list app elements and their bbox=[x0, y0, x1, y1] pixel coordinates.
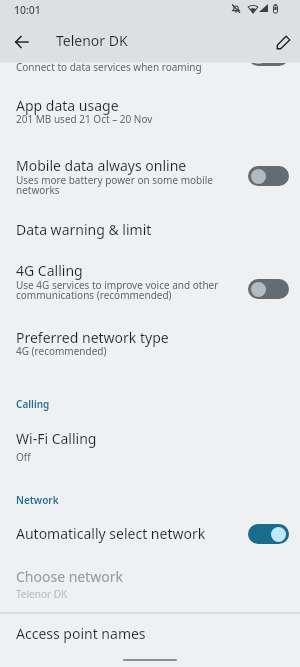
staticText: networks bbox=[16, 183, 60, 197]
staticText: Telenor DK bbox=[56, 31, 128, 50]
staticText: 4G Calling bbox=[16, 261, 83, 280]
staticText: Use 4G services to improve voice and oth… bbox=[16, 278, 219, 292]
staticText: 201 MB used 21 Oct – 20 Nov bbox=[16, 112, 153, 126]
staticText: Mobile data always online bbox=[16, 156, 187, 175]
button[interactable]: Switch off bbox=[248, 166, 289, 186]
staticText: Choose network bbox=[16, 567, 124, 586]
staticText: Automatically select network bbox=[16, 524, 206, 543]
staticText: Preferred network type bbox=[16, 328, 169, 347]
button[interactable]: Switch on bbox=[248, 524, 289, 544]
staticText: 10:01 bbox=[14, 3, 41, 17]
staticText: Connect to data services when roaming bbox=[16, 60, 202, 74]
staticText: Calling bbox=[16, 397, 50, 411]
staticText: Data warning & limit bbox=[16, 220, 152, 239]
staticText: Uses more battery power on some mobile bbox=[16, 173, 213, 187]
staticText: 4G (recommended) bbox=[16, 344, 107, 358]
staticText: Off bbox=[16, 450, 31, 464]
staticText: App data usage bbox=[16, 96, 119, 115]
button[interactable]: Edit bbox=[271, 30, 295, 54]
staticText: Network bbox=[16, 493, 59, 507]
button[interactable]: Switch off bbox=[248, 279, 289, 299]
staticText: Access point names bbox=[16, 624, 146, 643]
staticText: Telenor DK bbox=[16, 587, 68, 601]
button[interactable]: Navigate up bbox=[9, 30, 33, 54]
staticText: communications (recommended) bbox=[16, 288, 172, 302]
staticText: Wi-Fi Calling bbox=[16, 429, 97, 448]
button[interactable] bbox=[0, 44, 300, 70]
button[interactable]: Switch off bbox=[248, 46, 289, 66]
